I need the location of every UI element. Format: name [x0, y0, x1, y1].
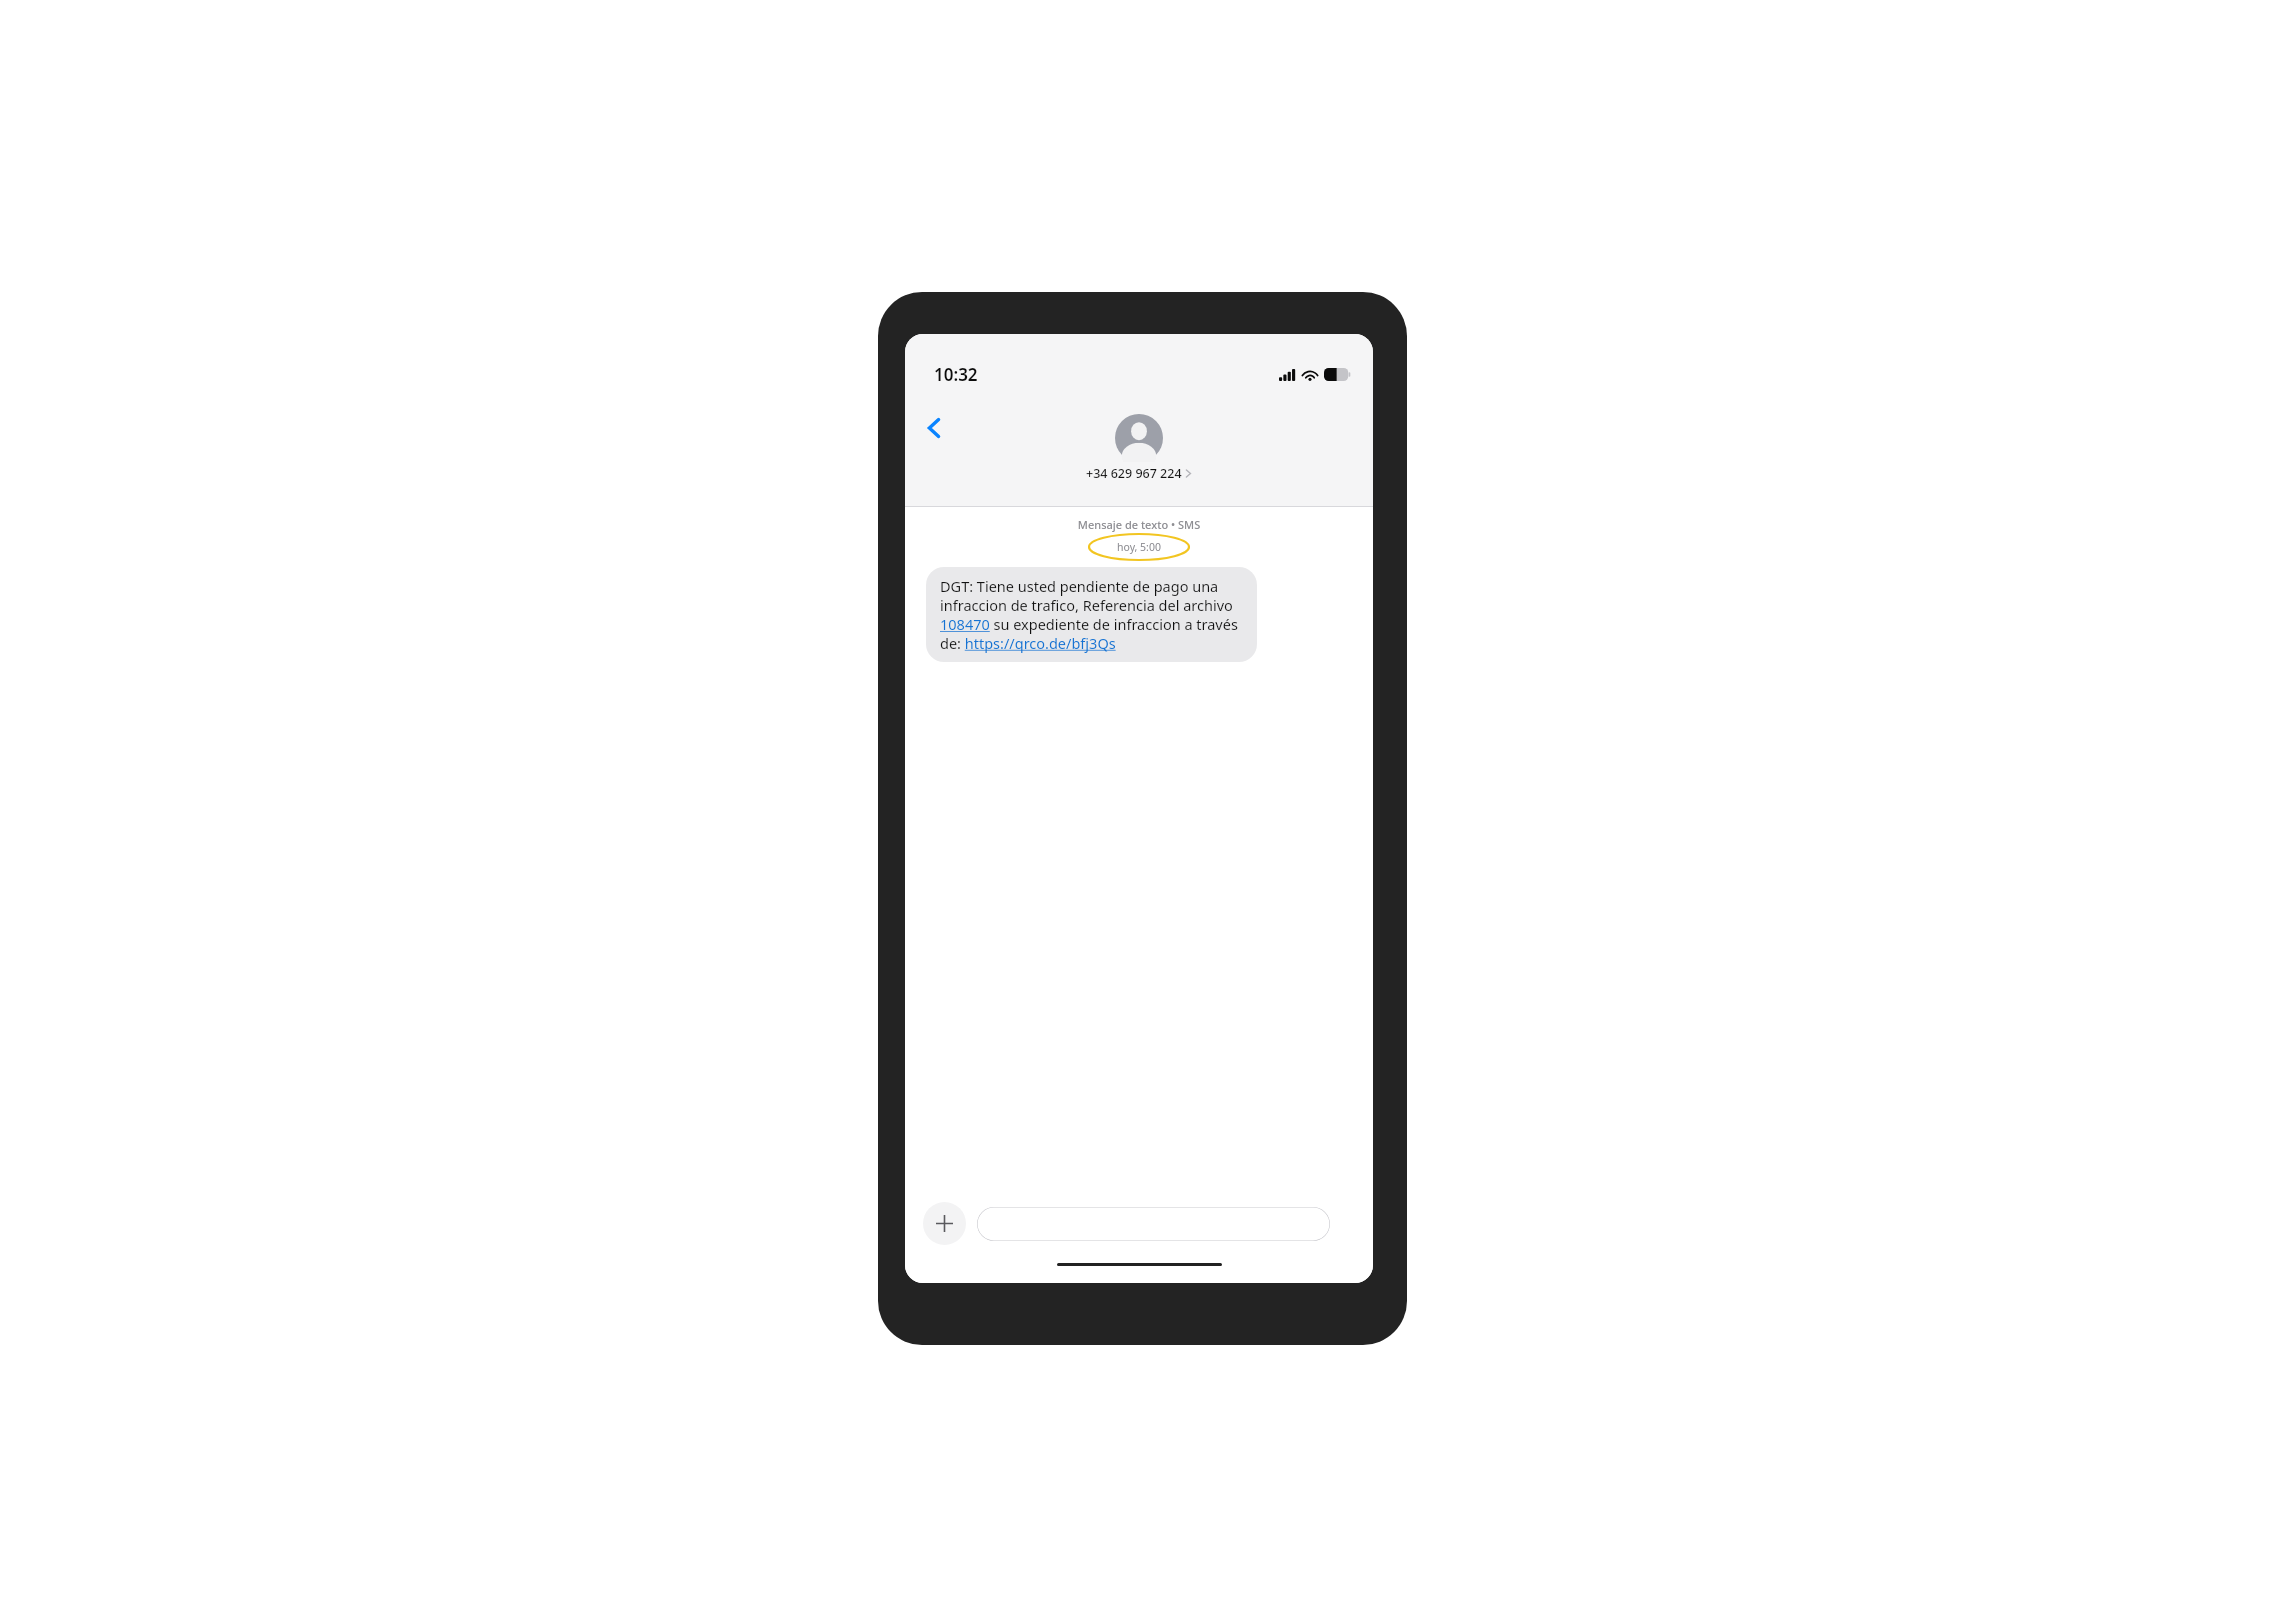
staticText: hoy, 5:00 — [1117, 540, 1161, 554]
staticText: Mensaje de texto • SMS — [905, 517, 1373, 532]
staticText: 10:32 — [934, 363, 978, 386]
button[interactable] — [977, 1207, 1330, 1241]
button[interactable]: DGT: Tiene usted pendiente de pago una i… — [926, 567, 1257, 662]
staticText: +34 629 967 224 — [1086, 465, 1182, 482]
staticText: DGT: Tiene usted pendiente de pago una i… — [940, 576, 1243, 653]
button[interactable]: Back — [915, 408, 955, 448]
button[interactable]: +34 629 967 224 — [1086, 414, 1192, 482]
button[interactable]: Add attachment — [923, 1202, 966, 1245]
